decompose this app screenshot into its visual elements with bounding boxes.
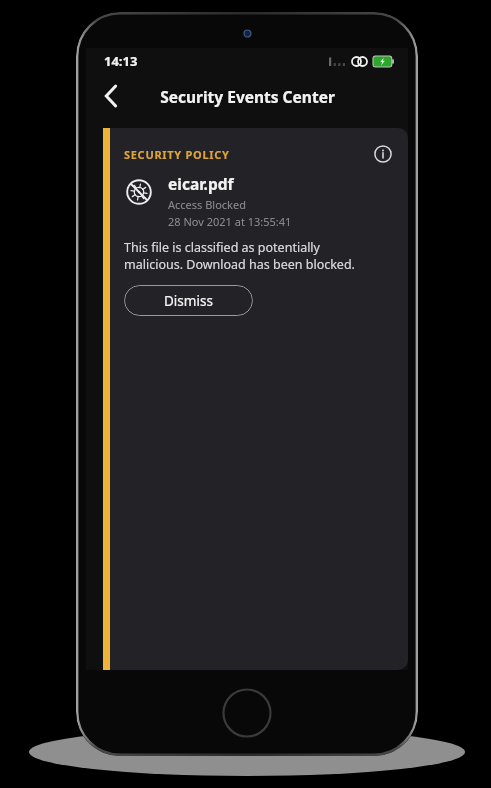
staticText: 28 Nov 2021 at 13:55:41	[168, 214, 292, 229]
staticText: Dismiss	[164, 292, 213, 310]
button[interactable]: SECURITY POLICY	[103, 128, 408, 670]
staticText: Access Blocked	[168, 197, 246, 212]
button[interactable]: More information	[370, 141, 396, 167]
staticText: This file is classified as potentially m…	[124, 239, 355, 272]
staticText: eicar.pdf	[168, 173, 234, 194]
button[interactable]: Dismiss	[124, 285, 253, 316]
button[interactable]: Back	[92, 77, 130, 115]
staticText: 14:13	[104, 52, 138, 70]
staticText: Security Events Center	[160, 86, 335, 107]
staticText: SECURITY POLICY	[124, 147, 230, 162]
